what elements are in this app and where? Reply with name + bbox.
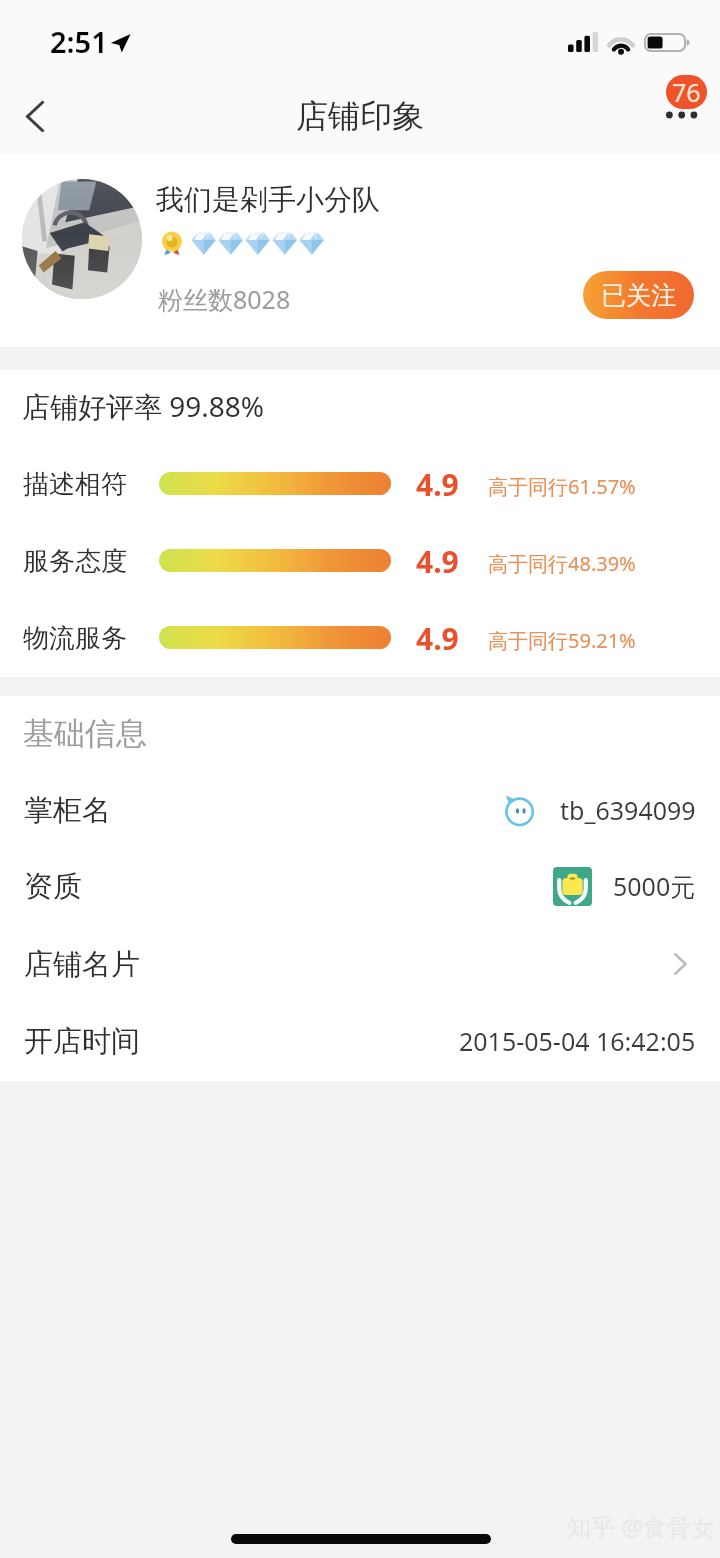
staticText: 开店时间: [24, 1023, 140, 1060]
staticText: 我们是剁手小分队: [156, 182, 380, 217]
staticText: 76: [672, 75, 701, 109]
staticText: 5000元: [613, 869, 696, 903]
staticText: 4.9: [416, 464, 459, 505]
staticText: 掌柜名: [24, 792, 111, 829]
staticText: 物流服务: [23, 622, 127, 655]
staticText: 2:51: [50, 22, 108, 60]
staticText: 店铺好评率 99.88%: [22, 387, 265, 425]
staticText: tb_6394099: [560, 793, 696, 827]
staticText: 高于同行61.57%: [488, 473, 636, 500]
staticText: 已关注: [601, 280, 676, 311]
button[interactable]: Shop avatar: [22, 179, 142, 299]
staticText: 店铺印象: [296, 96, 424, 136]
button[interactable]: 76 notifications: [666, 75, 707, 109]
staticText: 店铺名片: [24, 946, 140, 983]
button[interactable]: 掌柜名: [0, 772, 720, 848]
staticText: 4.9: [416, 541, 459, 582]
staticText: 高于同行48.39%: [488, 550, 636, 577]
staticText: 知乎 @食骨女: [567, 1510, 715, 1543]
staticText: 粉丝数8028: [158, 282, 291, 316]
staticText: 高于同行59.21%: [488, 627, 636, 654]
staticText: 资质: [24, 868, 82, 905]
staticText: 基础信息: [23, 714, 147, 753]
button[interactable]: Back: [2, 78, 68, 154]
staticText: 描述相符: [23, 468, 127, 501]
button[interactable]: More options: [656, 90, 708, 142]
button[interactable]: 店铺名片: [0, 926, 720, 1002]
staticText: 服务态度: [23, 545, 127, 578]
staticText: 4.9: [416, 618, 459, 659]
button[interactable]: 开店时间: [0, 1003, 720, 1079]
button[interactable]: 资质: [0, 848, 720, 924]
staticText: 2015-05-04 16:42:05: [459, 1024, 696, 1058]
button[interactable]: 已关注: [583, 271, 694, 319]
